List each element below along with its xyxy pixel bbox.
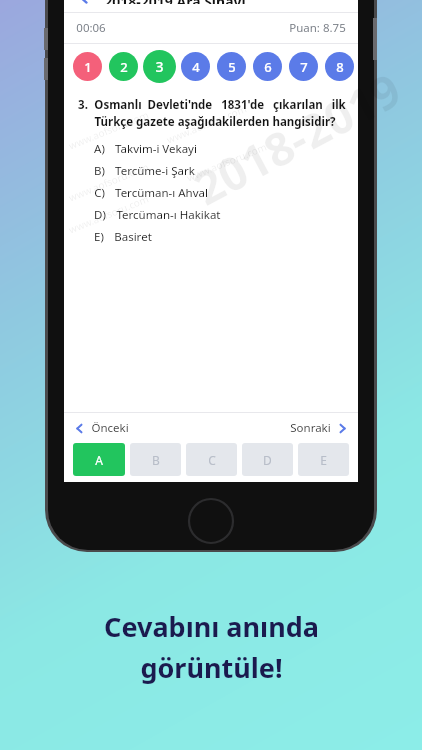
staticText: 2018-2019 Ara Sınavı — [104, 0, 246, 4]
staticText: 3. — [78, 97, 88, 113]
staticText: Sonraki — [290, 420, 331, 436]
button[interactable]: Önceki — [74, 420, 129, 436]
button[interactable]: C) — [94, 185, 346, 201]
staticText: B — [152, 452, 160, 468]
staticText: Tercüman-ı Ahval — [115, 185, 208, 201]
staticText: D — [263, 452, 272, 468]
button[interactable]: 8 — [325, 52, 354, 81]
button[interactable]: E — [298, 443, 349, 476]
staticText: Önceki — [91, 420, 129, 436]
staticText: görüntüle! — [140, 649, 283, 686]
staticText: Osmanlı Devleti'nde 1831'de çıkarılan il… — [94, 97, 346, 113]
button[interactable]: 1 — [73, 52, 102, 81]
staticText: A — [95, 452, 103, 468]
staticText: A) — [94, 141, 105, 157]
staticText: 7 — [300, 58, 308, 76]
staticText: Türkçe gazete aşağıdakilerden hangisidir… — [94, 114, 336, 130]
button[interactable]: 5 — [217, 52, 246, 81]
button[interactable]: B — [130, 443, 181, 476]
staticText: 1 — [84, 58, 92, 76]
button[interactable]: 3 — [143, 50, 176, 83]
staticText: B) — [94, 163, 105, 179]
staticText: D) — [94, 207, 106, 223]
staticText: 3 — [155, 57, 164, 76]
button[interactable]: C — [186, 443, 237, 476]
button[interactable]: E) — [94, 229, 346, 245]
button[interactable]: 6 — [253, 52, 282, 81]
button[interactable]: A — [73, 443, 125, 476]
staticText: Takvim-i Vekayi — [115, 141, 197, 157]
staticText: 8 — [336, 58, 344, 76]
staticText: 2018-2019 — [182, 58, 411, 219]
button[interactable]: Back — [64, 0, 104, 4]
staticText: Basiret — [114, 229, 152, 245]
staticText: Cevabını anında — [104, 608, 319, 645]
button[interactable]: D — [242, 443, 293, 476]
staticText: www.aofsoru.com — [66, 192, 151, 236]
button[interactable]: B) — [94, 163, 346, 179]
staticText: Tercüme-i Şark — [115, 163, 195, 179]
staticText: www.aofsoru.com — [66, 108, 151, 152]
staticText: 5 — [228, 58, 236, 76]
button[interactable]: 7 — [289, 52, 318, 81]
staticText: 2 — [120, 58, 128, 76]
staticText: www.aofsoru.com — [164, 102, 249, 146]
button[interactable]: D) — [94, 207, 346, 223]
staticText: 00:06 — [76, 20, 106, 36]
staticText: Tercüman-ı Hakikat — [116, 207, 221, 223]
staticText: E) — [94, 229, 104, 245]
staticText: C) — [94, 185, 105, 201]
button[interactable]: A) — [94, 141, 346, 157]
button[interactable]: 4 — [181, 52, 210, 81]
button[interactable]: 2 — [109, 52, 138, 81]
staticText: 6 — [264, 58, 272, 76]
staticText: www.aofsoru.com — [66, 160, 151, 204]
staticText: C — [208, 452, 216, 468]
staticText: Puan: 8.75 — [289, 20, 346, 36]
staticText: 4 — [192, 58, 200, 76]
staticText: www.aofsoru.com — [184, 140, 269, 184]
staticText: E — [320, 452, 327, 468]
button[interactable]: Sonraki — [290, 420, 348, 436]
